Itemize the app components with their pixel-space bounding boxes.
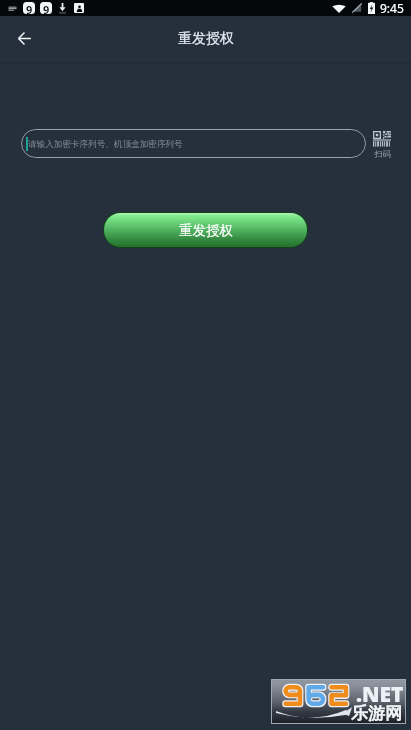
staticText: 9:45 (380, 0, 404, 16)
staticText: 9 (26, 2, 33, 14)
staticText: 扫码 (374, 149, 391, 160)
staticText: 9 (43, 2, 50, 14)
staticText: 重发授权 (179, 222, 233, 239)
staticText: 乐游网 (351, 703, 402, 724)
button[interactable]: Scan code (373, 131, 391, 160)
button[interactable]: 请输入加密卡序列号、机顶盒加密序列号 (21, 129, 366, 158)
staticText: 请输入加密卡序列号、机顶盒加密序列号 (28, 139, 183, 150)
button[interactable]: Back (8, 22, 41, 55)
button[interactable]: 重发授权 (104, 213, 307, 247)
staticText: .NET (356, 680, 404, 709)
staticText: 重发授权 (178, 30, 234, 48)
